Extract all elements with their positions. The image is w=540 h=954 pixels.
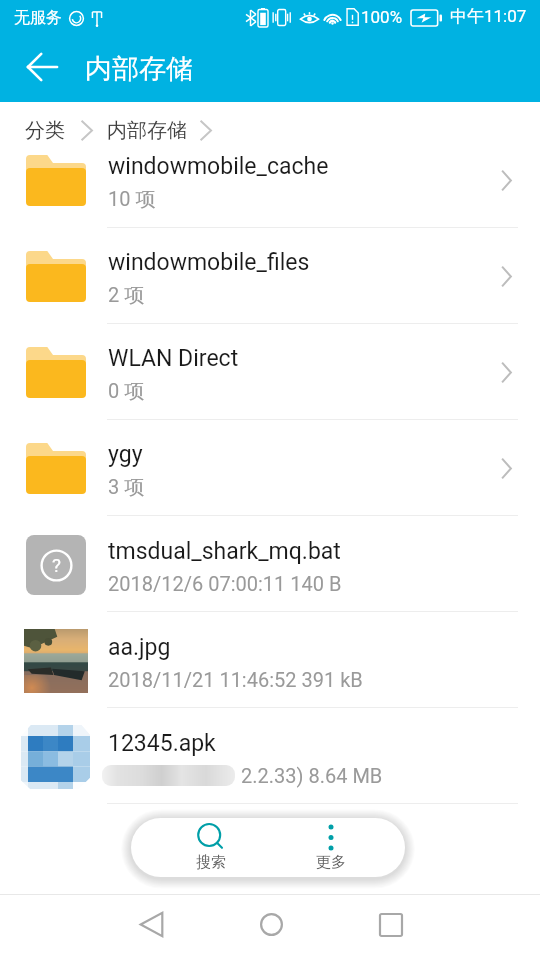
staticText: 更多 bbox=[316, 853, 346, 872]
staticText: WLAN Direct bbox=[108, 345, 239, 372]
button[interactable]: 分类 bbox=[25, 118, 65, 143]
staticText: 10 项 bbox=[108, 187, 156, 212]
staticText: aa.jpg bbox=[108, 634, 171, 661]
staticText: ? bbox=[52, 554, 61, 576]
staticText: 2018/12/6 07:00:11 140 B bbox=[108, 572, 342, 595]
button[interactable]: 搜索 bbox=[175, 818, 247, 877]
button[interactable]: WLAN Direct bbox=[0, 324, 540, 420]
staticText: 0 项 bbox=[108, 379, 145, 404]
button[interactable]: aa.jpg bbox=[0, 612, 540, 708]
button[interactable]: Recent apps bbox=[351, 895, 431, 954]
staticText: 中午11:07 bbox=[450, 6, 527, 27]
button[interactable]: Back bbox=[111, 895, 191, 954]
staticText: 搜索 bbox=[196, 853, 226, 872]
button[interactable]: Back bbox=[20, 45, 64, 89]
staticText: 无服务 bbox=[14, 8, 62, 28]
staticText: 2.2.33) 8.64 MB bbox=[241, 764, 383, 787]
staticText: 2018/11/21 11:46:52 391 kB bbox=[108, 668, 363, 691]
button[interactable]: 更多 bbox=[295, 818, 367, 877]
button[interactable]: ygy bbox=[0, 420, 540, 516]
staticText: 100% bbox=[361, 7, 403, 27]
button[interactable]: 内部存储 bbox=[107, 118, 187, 143]
button[interactable]: windowmobile_files bbox=[0, 228, 540, 324]
staticText: tmsdual_shark_mq.bat bbox=[108, 538, 341, 565]
button[interactable]: 12345.apk bbox=[0, 708, 540, 804]
button[interactable]: ? bbox=[0, 516, 540, 612]
button[interactable]: Home bbox=[231, 895, 311, 954]
staticText: windowmobile_cache bbox=[108, 153, 329, 180]
staticText: 3 项 bbox=[108, 475, 145, 500]
staticText: windowmobile_files bbox=[108, 249, 310, 276]
button[interactable]: windowmobile_cache bbox=[0, 132, 540, 228]
staticText: 2 项 bbox=[108, 283, 145, 308]
staticText: 内部存储 bbox=[85, 52, 193, 86]
staticText: 12345.apk bbox=[108, 730, 216, 757]
staticText: ygy bbox=[108, 441, 143, 468]
